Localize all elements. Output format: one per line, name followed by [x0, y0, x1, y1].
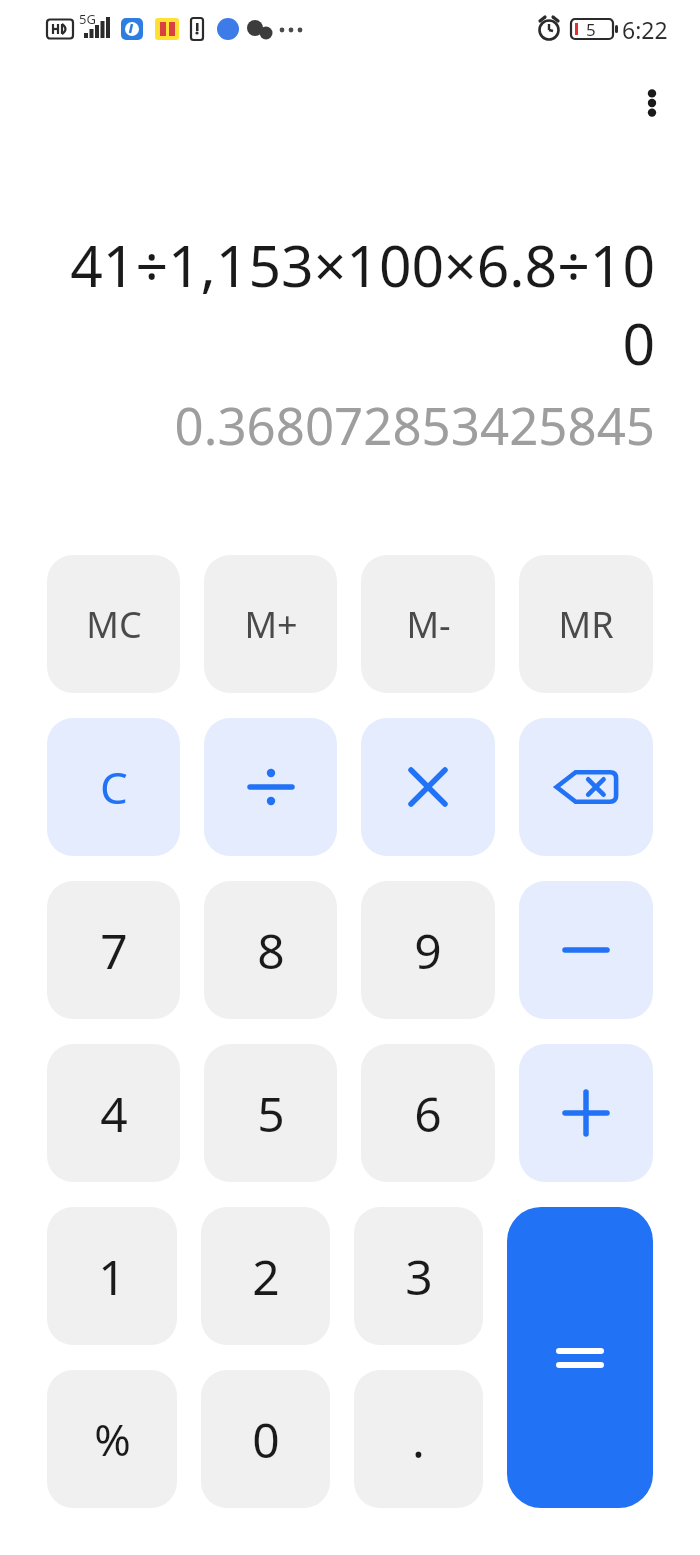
- staticText: 4: [100, 1081, 128, 1146]
- button[interactable]: 8: [204, 881, 337, 1019]
- staticText: %: [94, 1409, 131, 1469]
- button[interactable]: 3: [354, 1207, 483, 1345]
- button[interactable]: Backspace: [519, 718, 653, 856]
- staticText: C: [100, 757, 128, 817]
- staticText: .: [412, 1407, 425, 1472]
- button[interactable]: 7: [47, 881, 180, 1019]
- staticText: 3: [405, 1244, 433, 1309]
- staticText: MR: [558, 600, 614, 649]
- button[interactable]: Equals: [507, 1207, 653, 1508]
- button[interactable]: M+: [204, 555, 337, 693]
- staticText: 5: [257, 1081, 285, 1146]
- button[interactable]: M-: [361, 555, 495, 693]
- button[interactable]: Minus: [519, 881, 653, 1019]
- staticText: 9: [414, 918, 442, 983]
- button[interactable]: .: [354, 1370, 483, 1508]
- staticText: 8: [257, 918, 285, 983]
- button[interactable]: 4: [47, 1044, 180, 1182]
- button[interactable]: 0: [201, 1370, 330, 1508]
- staticText: 5: [586, 18, 596, 41]
- button[interactable]: More options: [624, 75, 680, 131]
- staticText: 7: [100, 918, 128, 983]
- staticText: 5G: [79, 10, 96, 28]
- button[interactable]: Plus: [519, 1044, 653, 1182]
- staticText: MC: [86, 600, 142, 649]
- button[interactable]: MC: [47, 555, 180, 693]
- button[interactable]: C: [47, 718, 180, 856]
- button[interactable]: Divide: [204, 718, 337, 856]
- button[interactable]: Multiply: [361, 718, 495, 856]
- staticText: 2: [252, 1244, 280, 1309]
- staticText: M+: [244, 600, 298, 649]
- button[interactable]: MR: [519, 555, 653, 693]
- staticText: M-: [406, 600, 451, 649]
- staticText: 0.368072853425845: [45, 390, 655, 459]
- staticText: 0: [252, 1407, 280, 1472]
- staticText: 41÷1,153×100×6.8÷100: [45, 226, 655, 382]
- button[interactable]: 1: [47, 1207, 177, 1345]
- button[interactable]: 5: [204, 1044, 337, 1182]
- staticText: 6: [414, 1081, 442, 1146]
- staticText: 1: [98, 1244, 126, 1309]
- button[interactable]: %: [47, 1370, 177, 1508]
- button[interactable]: 9: [361, 881, 495, 1019]
- staticText: 6:22: [622, 14, 668, 45]
- button[interactable]: 2: [201, 1207, 330, 1345]
- button[interactable]: 6: [361, 1044, 495, 1182]
